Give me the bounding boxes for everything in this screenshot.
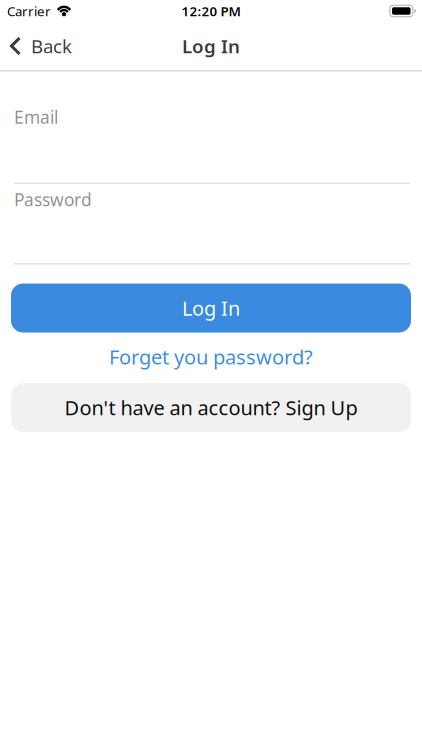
- staticText: Log In: [182, 295, 240, 321]
- button[interactable]: Log In: [11, 283, 411, 332]
- staticText: Carrier: [7, 2, 51, 20]
- textField[interactable]: Password: [0, 188, 422, 264]
- staticText: 12:20 PM: [181, 2, 240, 20]
- staticText: Back: [31, 34, 72, 58]
- staticText: Log In: [182, 34, 240, 58]
- textField[interactable]: Email: [0, 105, 422, 184]
- staticText: Don't have an account? Sign Up: [64, 394, 357, 421]
- button[interactable]: Forget you password?: [109, 343, 313, 370]
- staticText: Forget you password?: [109, 343, 313, 370]
- staticText: Email: [14, 105, 58, 128]
- staticText: Password: [14, 188, 92, 211]
- button[interactable]: Don't have an account? Sign Up: [11, 383, 411, 432]
- button[interactable]: Back: [0, 34, 72, 58]
